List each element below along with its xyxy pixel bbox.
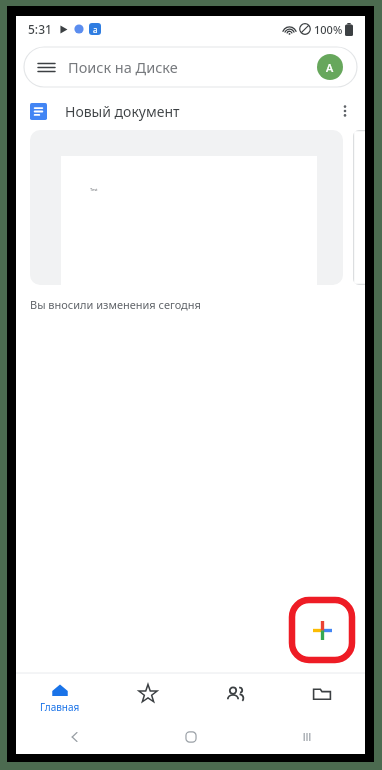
button[interactable]: Back xyxy=(16,720,133,754)
other: Recent apps xyxy=(300,730,314,744)
staticText: Главная xyxy=(40,700,80,714)
button[interactable]: Menu xyxy=(24,47,357,87)
staticText: Поиск на Диске xyxy=(68,57,178,77)
staticText: 5:31 xyxy=(28,21,52,37)
staticText: 100% xyxy=(314,22,343,37)
button[interactable]: Test xyxy=(30,130,343,285)
other: Back xyxy=(68,730,82,744)
button[interactable]: Главная xyxy=(16,674,104,720)
other: Menu xyxy=(38,59,55,76)
staticText: Вы вносили изменения сегодня xyxy=(30,297,201,312)
other: Home xyxy=(184,730,198,744)
button[interactable]: Home xyxy=(133,720,249,754)
staticText: a xyxy=(93,24,98,35)
button[interactable]: Files xyxy=(278,674,365,720)
button[interactable]: Recent apps xyxy=(249,720,365,754)
button[interactable]: Новый документ xyxy=(16,92,365,130)
button[interactable]: Starred xyxy=(104,674,191,720)
button[interactable]: Account xyxy=(317,54,343,80)
staticText: A xyxy=(326,60,334,75)
button[interactable]: More options xyxy=(335,101,355,121)
button[interactable]: Create xyxy=(299,607,345,653)
staticText: Новый документ xyxy=(65,102,180,121)
button[interactable] xyxy=(353,130,365,285)
button[interactable]: Shared with me xyxy=(191,674,278,720)
staticText: Test xyxy=(90,187,98,192)
